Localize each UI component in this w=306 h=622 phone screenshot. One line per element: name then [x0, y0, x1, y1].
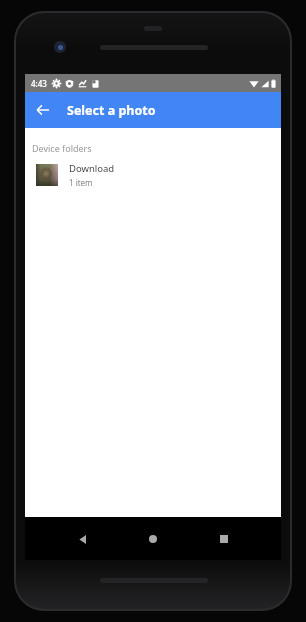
- button[interactable]: Recent apps: [211, 526, 237, 552]
- staticText: 1 item: [69, 177, 93, 188]
- staticText: 4:43: [31, 78, 47, 89]
- button[interactable]: Download: [25, 154, 281, 196]
- staticText: Select a photo: [67, 102, 156, 119]
- staticText: Download: [69, 162, 115, 175]
- button[interactable]: Back: [28, 95, 58, 125]
- button[interactable]: Home: [140, 526, 166, 552]
- button[interactable]: Back: [70, 526, 96, 552]
- staticText: Device folders: [32, 142, 92, 154]
